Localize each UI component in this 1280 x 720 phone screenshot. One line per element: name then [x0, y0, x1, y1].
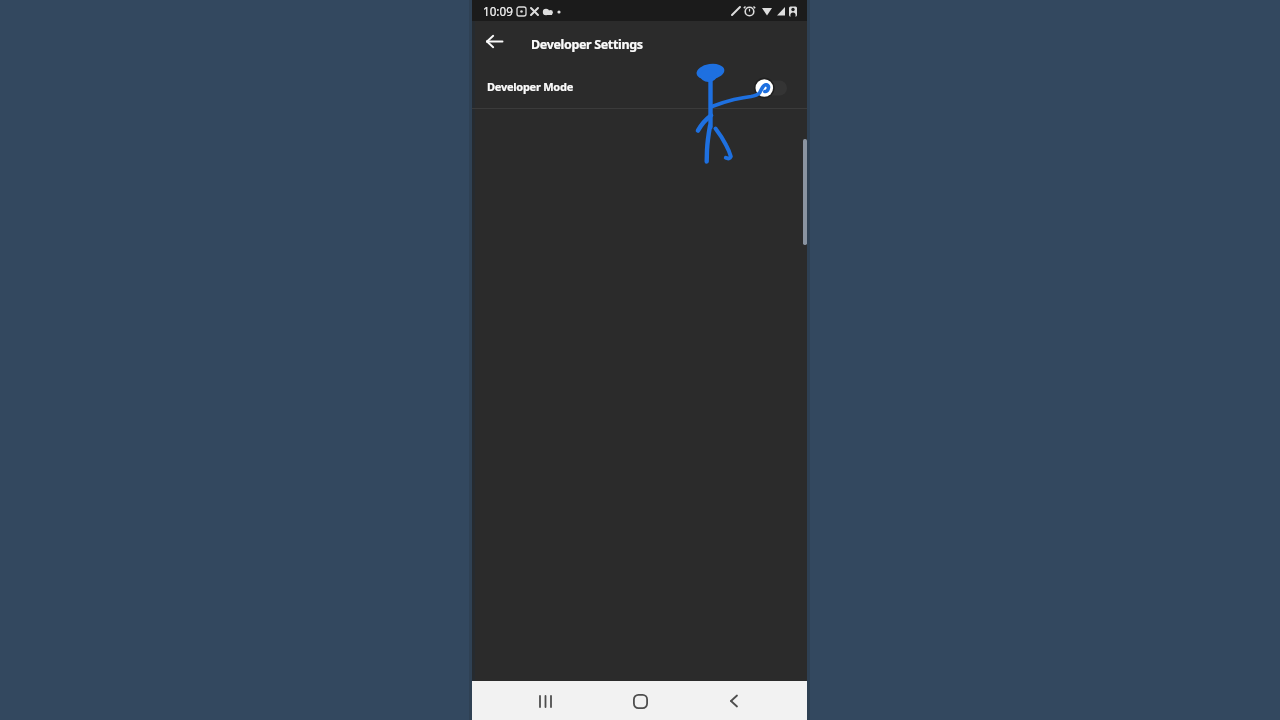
staticText: Developer Mode: [487, 79, 573, 94]
button[interactable]: Developer Mode: [472, 65, 807, 108]
button[interactable]: [624, 685, 656, 717]
button[interactable]: [750, 75, 790, 101]
staticText: 10:09: [483, 3, 513, 19]
button[interactable]: [718, 685, 750, 717]
staticText: Developer Settings: [531, 36, 643, 53]
button[interactable]: [478, 27, 510, 59]
button[interactable]: [529, 685, 561, 717]
